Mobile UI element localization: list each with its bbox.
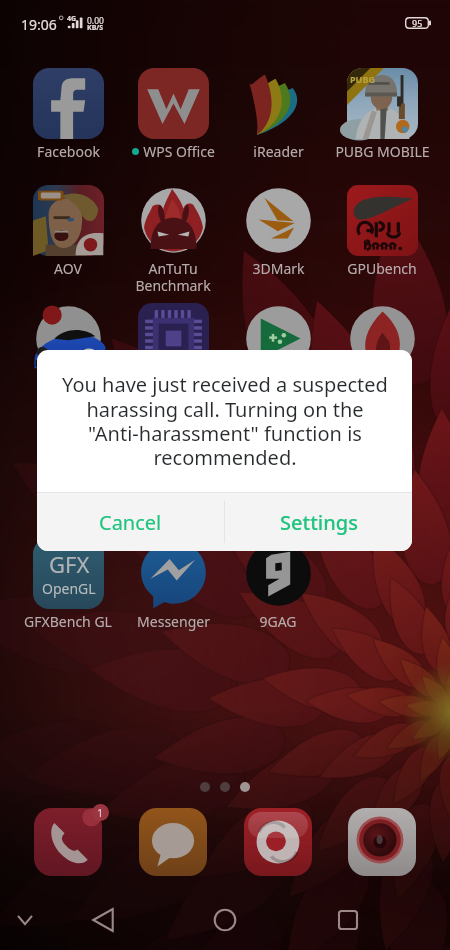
staticText: Messenger (137, 612, 210, 631)
staticText: 0.00 (87, 15, 104, 27)
button[interactable]: Browser (244, 808, 312, 876)
button[interactable]: Hide (3, 898, 47, 942)
staticText: GFX (49, 549, 90, 579)
button[interactable]: Phone (34, 808, 102, 876)
staticText: Facebook (37, 142, 100, 161)
staticText: PUBG (350, 73, 375, 85)
staticText: KB/S (87, 23, 104, 33)
staticText: WPS Office (143, 142, 215, 161)
button[interactable]: Cancel (37, 493, 224, 551)
staticText: 3DMark (252, 259, 305, 278)
button[interactable]: Messenger (121, 538, 225, 631)
staticText: 1 (97, 805, 104, 820)
button[interactable]: Facebook (16, 68, 120, 161)
button[interactable]: 9GAG (226, 538, 330, 631)
button[interactable]: Camera (348, 808, 416, 876)
button[interactable] (121, 303, 225, 374)
staticText: OpenGL (42, 579, 96, 598)
button[interactable] (330, 303, 434, 374)
staticText: AnTuTu Benchmark (135, 259, 211, 295)
button[interactable]: 3DMark (226, 185, 330, 278)
button[interactable]: Recents (326, 898, 370, 942)
button[interactable] (226, 303, 330, 374)
staticText: 9GAG (259, 612, 297, 631)
staticText: 4G (67, 14, 77, 24)
staticText: iReader (253, 142, 304, 161)
button[interactable]: Settings (225, 493, 412, 551)
button[interactable]: PUBG (330, 68, 434, 161)
staticText: PUBG MOBILE (335, 142, 430, 161)
staticText: 19:06 (21, 15, 57, 34)
staticText: You have just received a suspected haras… (60, 371, 390, 471)
staticText: Settings (280, 509, 358, 536)
staticText: GFXBench GL (24, 612, 112, 631)
button[interactable]: AnTuTu Benchmark (121, 185, 225, 295)
button[interactable]: WPS Office (121, 68, 225, 161)
button[interactable]: GFX (16, 538, 120, 631)
button[interactable]: AOV (16, 185, 120, 278)
button[interactable]: GPUbench (330, 185, 434, 278)
button[interactable]: iReader (226, 68, 330, 161)
staticText: 95 (412, 17, 423, 29)
button[interactable]: Home (203, 898, 247, 942)
staticText: Cancel (99, 509, 162, 536)
staticText: GPUbench (347, 259, 417, 278)
button[interactable]: Messages (139, 808, 207, 876)
button[interactable]: Back (81, 898, 125, 942)
staticText: AOV (54, 259, 82, 278)
button[interactable] (16, 303, 120, 374)
